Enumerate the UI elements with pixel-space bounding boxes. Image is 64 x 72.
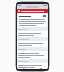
button[interactable]: [18, 42, 47, 46]
button[interactable]: [18, 52, 47, 58]
button[interactable]: [17, 60, 48, 63]
button[interactable]: Open: [19, 15, 46, 26]
button[interactable]: Open: [43, 15, 46, 17]
button[interactable]: [18, 32, 47, 36]
button[interactable]: [18, 64, 47, 68]
button[interactable]: [17, 28, 48, 31]
button[interactable]: [17, 38, 48, 41]
button[interactable]: [18, 9, 47, 13]
button[interactable]: [17, 48, 48, 51]
